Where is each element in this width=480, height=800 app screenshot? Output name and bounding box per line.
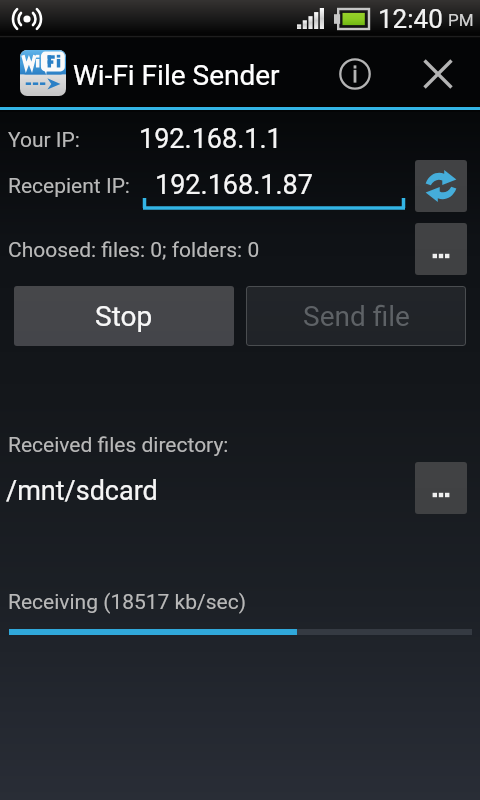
- staticText: /mnt/sdcard: [6, 475, 158, 507]
- staticText: Recepient IP:: [8, 174, 130, 199]
- staticText: Your IP:: [8, 128, 80, 153]
- staticText: Received files directory:: [8, 433, 229, 458]
- staticText: 12:40: [378, 4, 443, 34]
- staticText: 192.168.1.87: [155, 169, 313, 201]
- button[interactable]: Send file: [246, 286, 466, 346]
- button[interactable]: Stop: [14, 286, 234, 346]
- staticText: Wi-Fi File Sender: [73, 59, 280, 92]
- staticText: Choosed: files: 0; folders: 0: [8, 238, 260, 263]
- staticText: Send file: [303, 300, 410, 333]
- staticText: 192.168.1.1: [139, 123, 282, 155]
- button[interactable]: Close: [404, 40, 472, 108]
- button[interactable]: Choose directory: [415, 462, 467, 514]
- button[interactable]: Info: [321, 40, 389, 108]
- staticText: Stop: [95, 300, 153, 333]
- button[interactable]: Choose files: [415, 223, 467, 275]
- staticText: PM: [448, 10, 474, 30]
- staticText: Receiving (18517 kb/sec): [8, 590, 246, 615]
- button[interactable]: Refresh: [415, 160, 467, 212]
